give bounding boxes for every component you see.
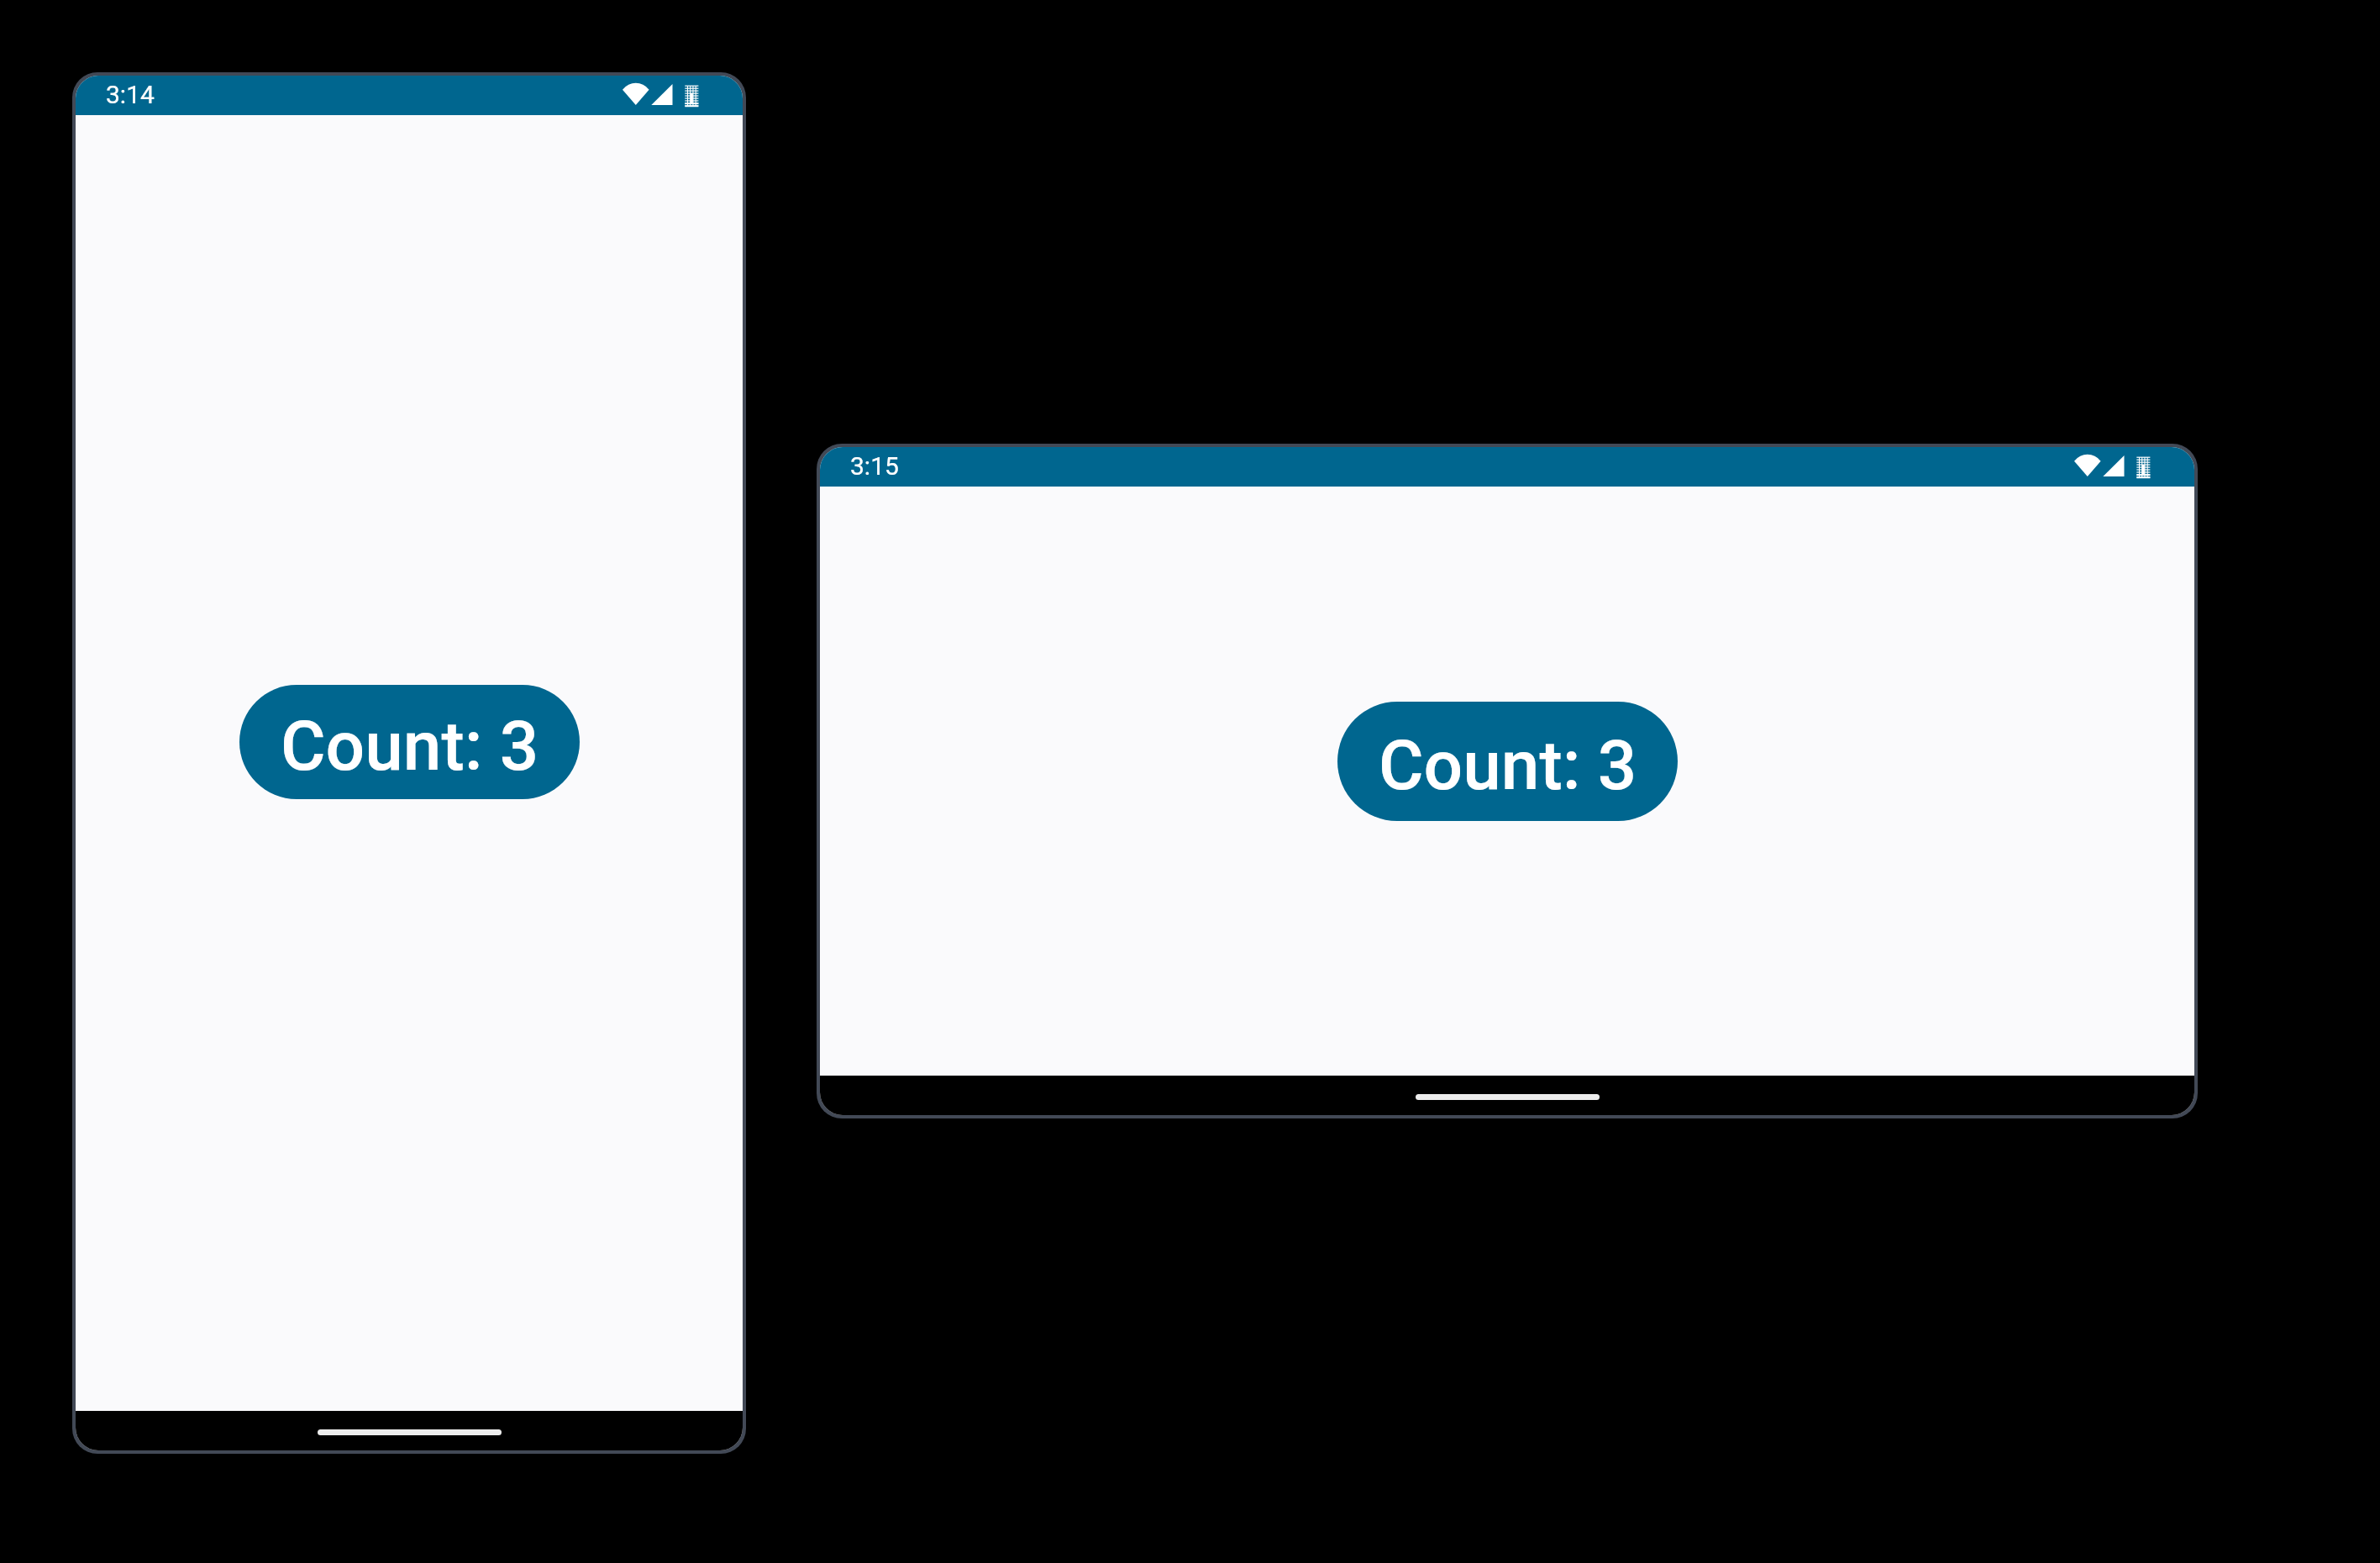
button[interactable]: Home <box>1416 1094 1600 1100</box>
other: Wi-Fi, mobile signal and battery status <box>2074 447 2155 487</box>
other: Wi-Fi, mobile signal and battery status <box>623 76 703 115</box>
button[interactable]: Home <box>318 1429 502 1435</box>
staticText: 3:14 <box>106 80 155 109</box>
staticText: 3:15 <box>850 451 899 481</box>
staticText: Count: 3 <box>281 706 539 787</box>
button[interactable]: Count: 3 <box>1337 702 1678 821</box>
staticText: Count: 3 <box>1379 725 1637 806</box>
button[interactable]: Count: 3 <box>239 685 580 799</box>
